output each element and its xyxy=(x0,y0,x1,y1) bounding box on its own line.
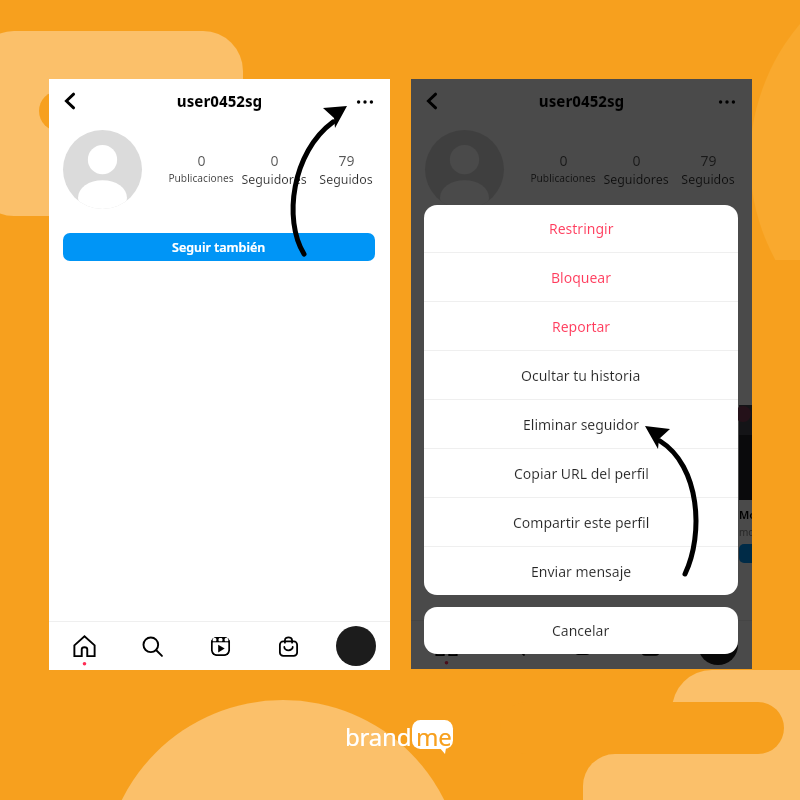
button[interactable]: Profile xyxy=(684,621,752,669)
button[interactable]: Cancelar xyxy=(424,607,738,654)
staticText: Seguidores xyxy=(241,171,307,188)
button[interactable]: Shop xyxy=(616,621,684,669)
button[interactable]: Search xyxy=(118,622,186,670)
staticText: Bloquear xyxy=(551,268,611,287)
button[interactable]: Enviar mensaje xyxy=(424,547,738,595)
staticText: Cancelar xyxy=(552,621,610,640)
button[interactable]: Seguir también xyxy=(425,233,737,261)
staticText: 79 xyxy=(338,151,355,170)
staticText: 0 xyxy=(197,151,206,170)
staticText: Enviar mensaje xyxy=(531,562,632,581)
button[interactable]: Back xyxy=(417,86,447,116)
button[interactable]: Profile xyxy=(322,622,390,670)
staticText: Publicaciones xyxy=(168,171,234,185)
staticText: 0 xyxy=(632,151,641,170)
button[interactable]: Shop xyxy=(254,622,322,670)
staticText: user0452sg xyxy=(49,91,390,111)
button[interactable]: Reels xyxy=(186,622,254,670)
button[interactable]: Eliminar seguidor xyxy=(424,400,738,448)
staticText: Mo xyxy=(739,507,752,522)
staticText: Seguir también xyxy=(172,239,266,256)
staticText: Seguir también xyxy=(534,239,628,256)
button[interactable]: Ocultar tu historia xyxy=(424,351,738,399)
button[interactable]: Bloquear xyxy=(424,253,738,301)
button[interactable]: Reels xyxy=(548,621,616,669)
staticText: Publicaciones xyxy=(530,171,596,185)
staticText: Reportar xyxy=(552,317,611,336)
button[interactable]: Restringir xyxy=(424,205,738,252)
staticText: Seguidos xyxy=(319,171,373,188)
staticText: mo xyxy=(739,525,752,539)
staticText: Seguidores xyxy=(603,171,669,188)
staticText: Seguidos xyxy=(681,171,735,188)
staticText: Copiar URL del perfil xyxy=(514,464,649,483)
button[interactable]: Home xyxy=(49,622,118,670)
button[interactable]: More options xyxy=(712,87,742,117)
staticText: 0 xyxy=(270,151,279,170)
staticText: 79 xyxy=(700,151,717,170)
button[interactable]: Copiar URL del perfil xyxy=(424,449,738,497)
staticText: me xyxy=(416,720,452,753)
button[interactable]: Reportar xyxy=(424,302,738,350)
button[interactable]: Search xyxy=(480,621,548,669)
staticText: user0452sg xyxy=(411,91,752,111)
button[interactable]: Seguir también xyxy=(63,233,375,261)
staticText: Eliminar seguidor xyxy=(523,415,639,434)
button[interactable]: Compartir este perfil xyxy=(424,498,738,546)
button[interactable]: Home xyxy=(411,621,480,669)
staticText: Ocultar tu historia xyxy=(521,366,641,385)
button[interactable]: More options xyxy=(350,87,380,117)
staticText: 0 xyxy=(559,151,568,170)
staticText: Restringir xyxy=(549,219,614,238)
staticText: Compartir este perfil xyxy=(513,513,650,532)
staticText: brand xyxy=(345,720,412,753)
button[interactable]: Back xyxy=(55,86,85,116)
